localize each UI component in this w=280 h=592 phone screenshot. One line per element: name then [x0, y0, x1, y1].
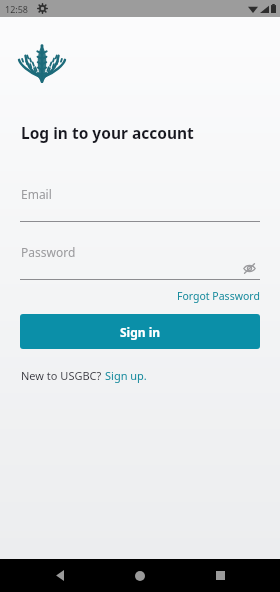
button[interactable]: Back [40, 559, 80, 592]
other: USGBC logo [19, 43, 65, 85]
button[interactable]: Home [120, 559, 160, 592]
button[interactable]: Sign up. [105, 368, 147, 383]
button[interactable]: Email [20, 185, 260, 221]
staticText: Email [21, 186, 52, 202]
staticText: Forgot Password [177, 289, 260, 303]
button[interactable]: Sign in [20, 314, 260, 349]
staticText: New to USGBC? [21, 368, 105, 383]
staticText: Sign in [120, 324, 161, 340]
button[interactable]: Show password [238, 257, 260, 279]
staticText: 12:58 [5, 3, 29, 15]
staticText: Password [21, 244, 76, 260]
button[interactable]: Forgot Password [175, 287, 262, 305]
button[interactable]: Password [20, 243, 260, 279]
button[interactable]: Recents [200, 559, 240, 592]
staticText: Log in to your account [21, 122, 194, 143]
staticText: Sign up. [105, 368, 147, 383]
